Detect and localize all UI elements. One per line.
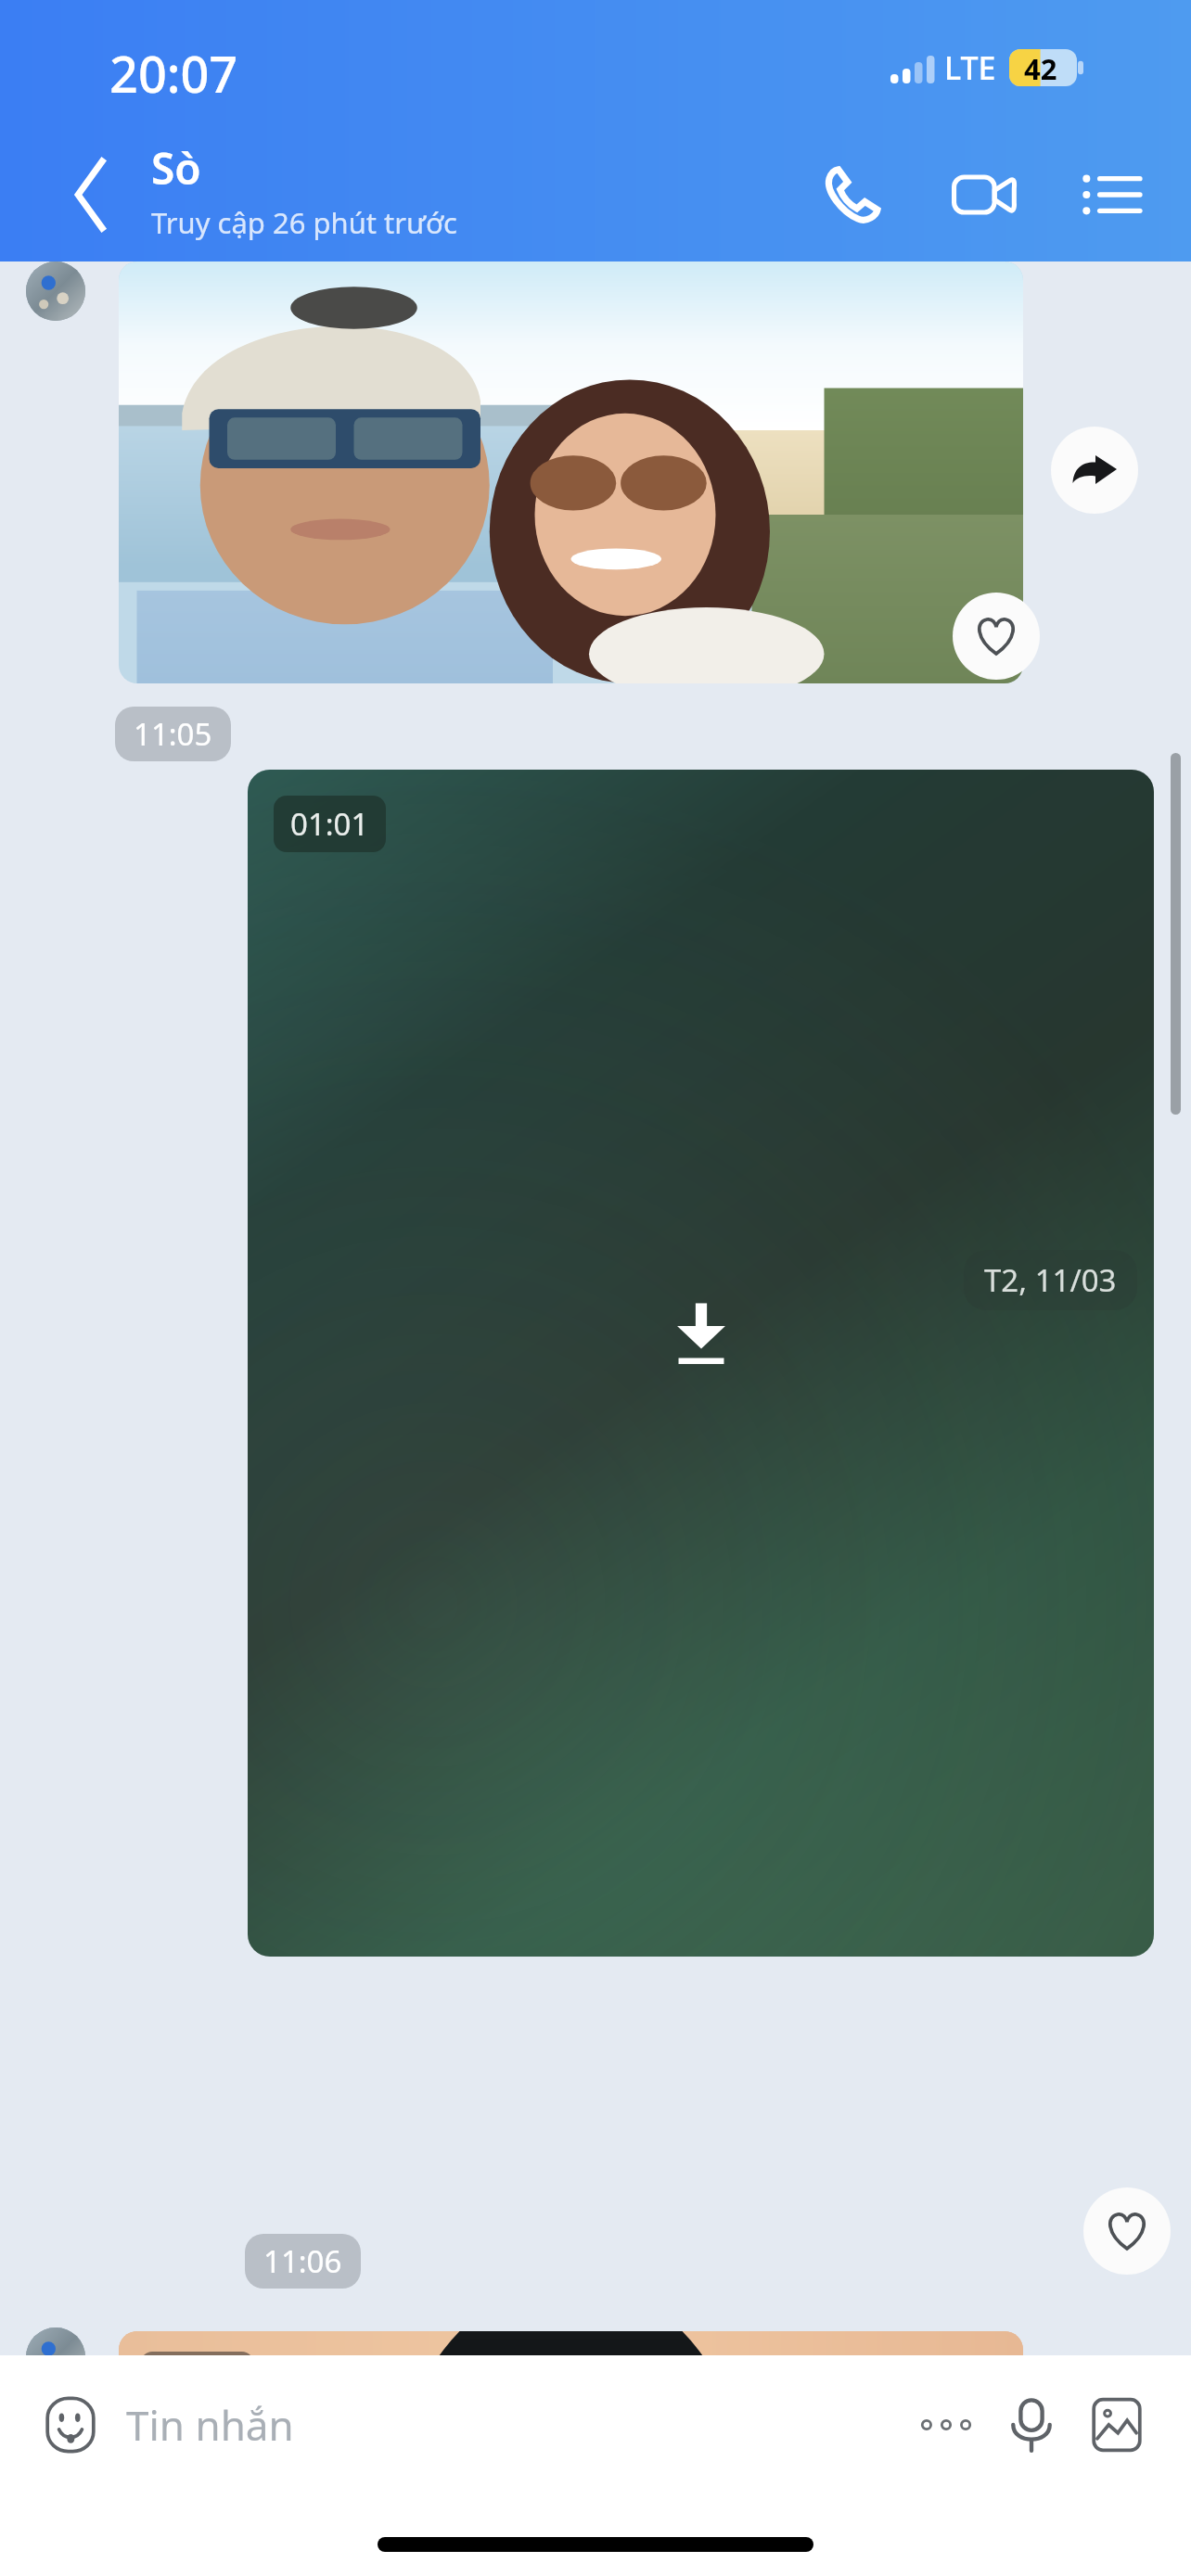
- button[interactable]: Send image: [1074, 2382, 1159, 2468]
- button[interactable]: Call: [807, 148, 900, 241]
- staticText: 11:05: [134, 713, 212, 755]
- button[interactable]: Emoji: [28, 2382, 113, 2468]
- button[interactable]: Download: [646, 1280, 757, 1391]
- staticText: LTE: [944, 46, 996, 89]
- staticText: 01:01: [290, 803, 369, 845]
- button[interactable]: Profile picture: [26, 261, 85, 321]
- button[interactable]: More options: [903, 2382, 989, 2468]
- button[interactable]: [119, 261, 1023, 683]
- button[interactable]: Profile picture: [26, 2327, 85, 2387]
- button[interactable]: 00:32: [119, 2331, 1023, 2576]
- button[interactable]: Voice message: [989, 2382, 1074, 2468]
- staticText: 42: [1024, 49, 1057, 86]
- staticText: Tin nhắn: [126, 2397, 294, 2453]
- staticText: Sò: [151, 139, 201, 198]
- button[interactable]: Back: [37, 144, 139, 246]
- button[interactable]: Video call: [937, 148, 1030, 241]
- staticText: 20:07: [109, 39, 238, 108]
- button[interactable]: React with heart: [1083, 2187, 1171, 2275]
- staticText: T2, 11/03: [984, 1259, 1117, 1301]
- button[interactable]: Menu: [1065, 148, 1158, 241]
- staticText: 11:06: [263, 2240, 342, 2282]
- button[interactable]: 01:01: [248, 770, 1154, 1957]
- button[interactable]: Forward: [1051, 427, 1138, 514]
- staticText: Truy cập 26 phút trước: [151, 203, 457, 242]
- button[interactable]: Tin nhắn: [113, 2355, 903, 2494]
- button[interactable]: React with heart: [953, 593, 1040, 680]
